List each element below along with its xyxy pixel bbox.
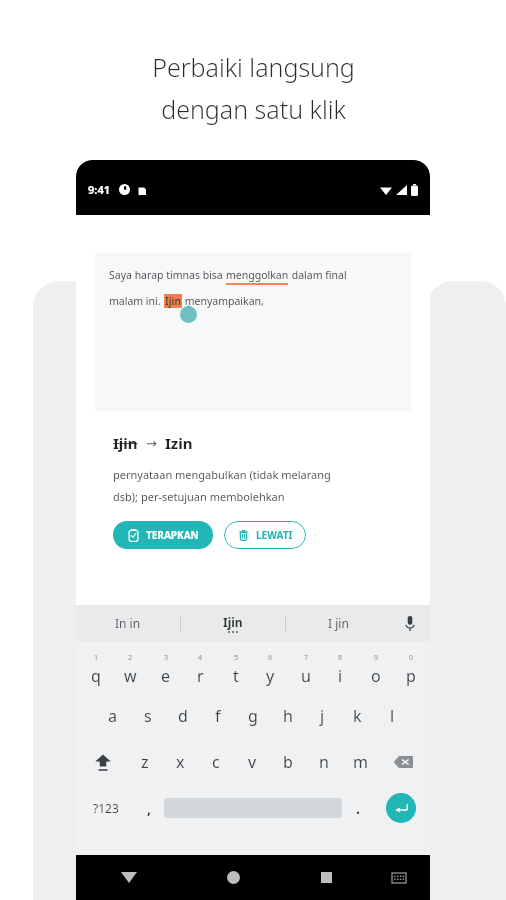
staticText: g <box>248 705 258 727</box>
staticText: m <box>353 751 368 773</box>
staticText: Ijin <box>223 614 243 630</box>
staticText: LEWATI <box>256 528 293 542</box>
button[interactable]: Voice input <box>390 605 430 641</box>
staticText: 8 <box>338 653 343 663</box>
staticText: s <box>144 705 152 727</box>
staticText: 0 <box>409 653 414 663</box>
staticText: menyampaikan, <box>182 294 264 308</box>
button[interactable]: n <box>306 739 342 785</box>
staticText: k <box>353 705 362 727</box>
button[interactable]: a <box>95 693 130 739</box>
staticText: w <box>124 665 137 687</box>
staticText: dengan satu klik <box>161 92 346 126</box>
button[interactable]: 3 <box>148 647 183 693</box>
button[interactable]: h <box>270 693 305 739</box>
staticText: i <box>338 665 343 687</box>
staticText: o <box>371 665 381 687</box>
staticText: b <box>283 751 293 773</box>
button[interactable]: b <box>270 739 306 785</box>
staticText: TERAPKAN <box>146 528 199 542</box>
button[interactable]: g <box>235 693 270 739</box>
staticText: 3 <box>164 653 169 663</box>
button[interactable]: d <box>165 693 200 739</box>
button[interactable]: j <box>305 693 340 739</box>
staticText: → <box>146 436 157 451</box>
button[interactable]: In in <box>76 605 180 641</box>
staticText: e <box>161 665 171 687</box>
staticText: Izin <box>165 433 193 453</box>
staticText: dsb); per-setujuan membolehkan <box>113 489 285 504</box>
button[interactable]: Shift <box>78 739 127 785</box>
staticText: x <box>176 751 185 773</box>
button[interactable]: ?123 <box>78 785 133 831</box>
button[interactable]: c <box>198 739 234 785</box>
staticText: In in <box>115 615 141 631</box>
button[interactable]: 7 <box>288 647 323 693</box>
staticText: pernyataan mengabulkan (tidak melarang <box>113 467 331 482</box>
staticText: 2 <box>128 653 133 663</box>
staticText: q <box>91 665 101 687</box>
staticText: menggolkan <box>226 268 289 282</box>
staticText: n <box>319 751 329 773</box>
button[interactable]: s <box>130 693 165 739</box>
button[interactable]: Home <box>181 855 285 900</box>
staticText: 4 <box>198 653 203 663</box>
staticText: malam ini. <box>109 294 164 308</box>
staticText: . <box>356 799 360 818</box>
staticText: f <box>215 705 221 727</box>
button[interactable]: Ijin <box>181 605 285 641</box>
staticText: Ijin <box>113 433 138 453</box>
staticText: h <box>283 705 293 727</box>
staticText: r <box>197 665 204 687</box>
button[interactable]: Back <box>76 855 181 900</box>
staticText: 6 <box>268 653 273 663</box>
button[interactable]: , <box>133 785 164 831</box>
staticText: j <box>320 705 325 727</box>
staticText: ?123 <box>93 800 119 816</box>
button[interactable]: Recents <box>285 855 368 900</box>
button[interactable]: TERAPKAN <box>113 521 213 549</box>
staticText: t <box>233 665 239 687</box>
button[interactable]: Switch keyboard <box>368 855 430 900</box>
button[interactable]: . <box>342 785 373 831</box>
staticText: v <box>248 751 257 773</box>
staticText: d <box>178 705 188 727</box>
button[interactable]: 8 <box>323 647 358 693</box>
staticText: u <box>301 665 311 687</box>
staticText: z <box>141 751 149 773</box>
button[interactable]: 0 <box>393 647 428 693</box>
button[interactable]: 1 <box>78 647 113 693</box>
staticText: 5 <box>234 653 239 663</box>
staticText: c <box>212 751 220 773</box>
button[interactable]: Enter <box>386 793 416 823</box>
staticText: , <box>147 799 151 818</box>
button[interactable]: 6 <box>253 647 288 693</box>
staticText: I jin <box>328 615 349 631</box>
staticText: Saya harap timnas bisa <box>109 268 226 282</box>
button[interactable]: k <box>340 693 375 739</box>
button[interactable]: 5 <box>218 647 253 693</box>
button[interactable]: LEWATI <box>224 521 306 549</box>
button[interactable]: m <box>342 739 378 785</box>
button[interactable]: l <box>375 693 410 739</box>
button[interactable]: x <box>162 739 198 785</box>
staticText: l <box>390 705 395 727</box>
button[interactable]: v <box>234 739 270 785</box>
staticText: 9:41 <box>88 182 110 197</box>
staticText: a <box>108 705 117 727</box>
button[interactable]: f <box>200 693 235 739</box>
staticText: 1 <box>94 653 99 663</box>
button[interactable]: Backspace <box>378 739 428 785</box>
button[interactable]: 4 <box>183 647 218 693</box>
staticText: dalam final <box>289 268 347 282</box>
button[interactable]: 2 <box>113 647 148 693</box>
staticText: p <box>406 665 416 687</box>
button[interactable]: I jin <box>286 605 390 641</box>
staticText: Ijin <box>165 294 181 308</box>
staticText: y <box>266 665 275 687</box>
staticText: 7 <box>304 653 309 663</box>
button[interactable]: z <box>127 739 162 785</box>
staticText: Perbaiki langsung <box>152 50 355 84</box>
button[interactable]: 9 <box>358 647 393 693</box>
